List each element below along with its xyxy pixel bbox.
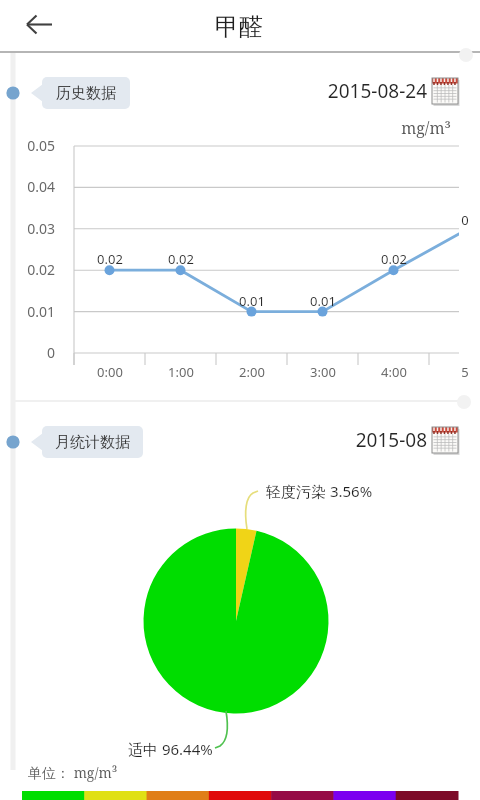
staticText: 0.03 [0, 219, 55, 238]
button[interactable]: 月统计数据 [42, 426, 143, 458]
staticText: 2015-08 [200, 427, 427, 453]
staticText: 2015-08-24 [200, 78, 427, 104]
staticText: 0.02 [0, 260, 55, 279]
staticText: 0 [0, 343, 55, 362]
staticText: mg/m³ [0, 117, 451, 139]
staticText: 0 [440, 211, 480, 229]
staticText: 甲醛 [215, 12, 263, 42]
button[interactable]: 历史数据 [42, 77, 130, 109]
staticText: 0:00 [85, 363, 135, 381]
staticText: 2:00 [227, 363, 277, 381]
staticText: 0.01 [0, 302, 55, 321]
staticText: 0.01 [227, 292, 277, 310]
staticText: 5 [440, 363, 480, 381]
staticText: 0.04 [0, 177, 55, 196]
button[interactable]: Back [14, 0, 62, 48]
staticText: 3:00 [298, 363, 348, 381]
staticText: 0.01 [298, 292, 348, 310]
staticText: 1:00 [156, 363, 206, 381]
staticText: 0.02 [369, 250, 419, 268]
staticText: 月统计数据 [55, 433, 130, 452]
staticText: 0.05 [0, 136, 55, 155]
staticText: 历史数据 [56, 84, 116, 103]
staticText: 单位： mg/m³ [28, 763, 118, 782]
staticText: 0.02 [156, 250, 206, 268]
staticText: 适中 96.44% [128, 739, 213, 759]
staticText: 4:00 [369, 363, 419, 381]
staticText: 轻度污染 3.56% [266, 481, 373, 501]
staticText: 0.02 [85, 250, 135, 268]
